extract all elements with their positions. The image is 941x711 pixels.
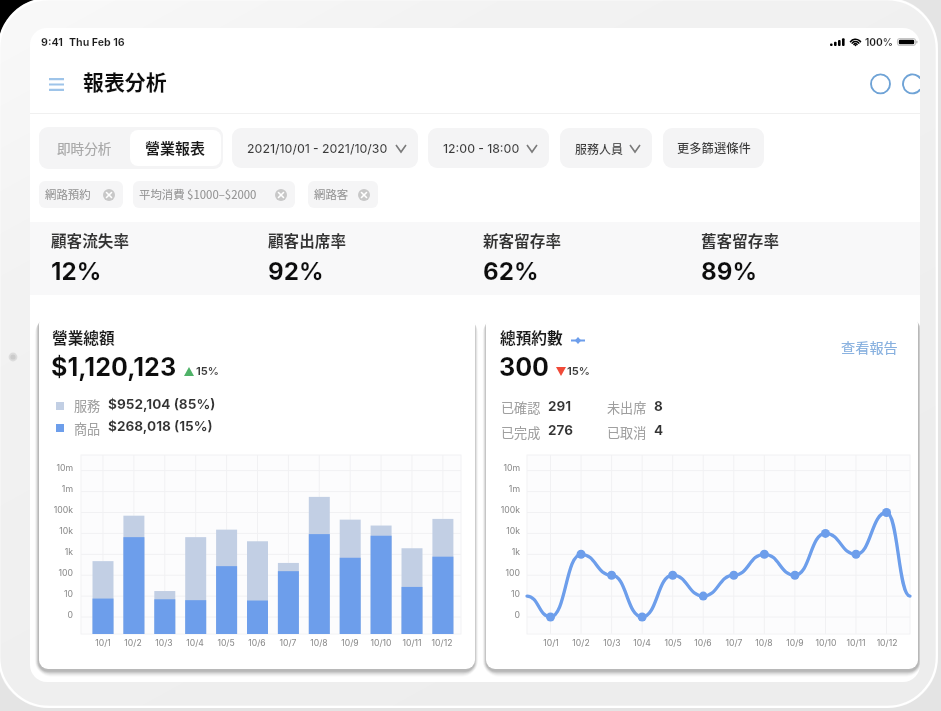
button[interactable]: 網路客 bbox=[308, 181, 378, 208]
staticText: 10/5 bbox=[653, 638, 693, 651]
staticText: 276 bbox=[548, 422, 573, 438]
staticText: 100% bbox=[865, 36, 893, 48]
button[interactable]: Notifications bbox=[869, 72, 892, 95]
staticText: 10/1 bbox=[531, 638, 571, 651]
button[interactable]: Refresh bbox=[901, 72, 920, 95]
staticText: 營業報表 bbox=[145, 137, 206, 159]
staticText: 報表分析 bbox=[83, 66, 167, 96]
staticText: 10/9 bbox=[775, 638, 815, 651]
staticText: 89% bbox=[701, 257, 758, 286]
staticText: 10/5 bbox=[206, 638, 246, 651]
staticText: 10/2 bbox=[113, 638, 153, 651]
staticText: 已確認 bbox=[501, 398, 541, 417]
staticText: 1k bbox=[486, 547, 520, 561]
staticText: 15% bbox=[567, 364, 590, 377]
staticText: 92% bbox=[268, 257, 324, 286]
staticText: 即時分析 bbox=[57, 138, 112, 158]
staticText: 300 bbox=[499, 352, 550, 382]
staticText: 10/10 bbox=[361, 638, 401, 651]
staticText: 10/6 bbox=[237, 638, 277, 651]
staticText: 10/12 bbox=[867, 638, 907, 651]
staticText: 9:41 bbox=[41, 36, 63, 49]
staticText: 10/6 bbox=[683, 638, 723, 651]
staticText: 10/3 bbox=[592, 638, 632, 651]
button[interactable]: 更多篩選條件 bbox=[663, 128, 764, 168]
staticText: 10/11 bbox=[392, 638, 432, 651]
staticText: 12% bbox=[51, 257, 102, 286]
button[interactable]: 網路預約 bbox=[39, 181, 123, 208]
staticText: 顧客出席率 bbox=[268, 229, 346, 252]
staticText: 10/4 bbox=[622, 638, 662, 651]
staticText: 12:00 - 18:00 bbox=[443, 141, 520, 156]
staticText: 商品 bbox=[74, 419, 101, 438]
staticText: 10m bbox=[486, 463, 520, 477]
staticText: 100k bbox=[486, 505, 520, 519]
staticText: 8 bbox=[654, 398, 663, 414]
staticText: 10k bbox=[486, 526, 520, 540]
staticText: 10k bbox=[39, 526, 73, 540]
staticText: 1m bbox=[486, 484, 520, 498]
staticText: 100 bbox=[486, 568, 520, 582]
staticText: 10 bbox=[39, 589, 73, 603]
staticText: 更多篩選條件 bbox=[677, 139, 751, 157]
staticText: 顧客流失率 bbox=[51, 229, 129, 252]
staticText: 10 bbox=[486, 589, 520, 603]
staticText: 10/11 bbox=[836, 638, 876, 651]
staticText: 10/1 bbox=[83, 638, 123, 651]
button[interactable]: 平均消費 $1000–$2000 bbox=[133, 181, 295, 208]
staticText: 網路預約 bbox=[45, 186, 91, 203]
staticText: 服務人員 bbox=[575, 140, 624, 157]
button[interactable]: 營業總額 bbox=[39, 315, 475, 669]
staticText: 291 bbox=[548, 398, 572, 414]
staticText: 2021/10/01 - 2021/10/30 bbox=[247, 141, 388, 156]
staticText: 舊客留存率 bbox=[701, 229, 779, 252]
staticText: 服務 bbox=[74, 396, 101, 415]
staticText: 總預約數 bbox=[500, 326, 563, 349]
staticText: 10/2 bbox=[561, 638, 601, 651]
staticText: 未出席 bbox=[607, 398, 647, 417]
staticText: 10/12 bbox=[422, 638, 462, 651]
button[interactable]: Menu bbox=[37, 65, 75, 103]
staticText: Thu Feb 16 bbox=[69, 36, 125, 49]
staticText: 10/4 bbox=[175, 638, 215, 651]
staticText: 10/7 bbox=[268, 638, 308, 651]
button[interactable]: 查看報告 bbox=[841, 337, 903, 357]
staticText: 0 bbox=[39, 610, 73, 624]
staticText: 10/8 bbox=[299, 638, 339, 651]
staticText: 0 bbox=[486, 610, 520, 624]
button[interactable]: 12:00 - 18:00 bbox=[428, 128, 549, 168]
staticText: 10/7 bbox=[714, 638, 754, 651]
button[interactable]: 營業報表 bbox=[130, 130, 221, 166]
staticText: $952,104 (85%) bbox=[108, 396, 216, 412]
staticText: $268,018 (15%) bbox=[108, 418, 213, 434]
staticText: 10/8 bbox=[744, 638, 784, 651]
staticText: 查看報告 bbox=[841, 337, 898, 357]
staticText: 100 bbox=[39, 568, 73, 582]
button[interactable]: 總預約數 bbox=[486, 315, 918, 669]
staticText: 10/3 bbox=[144, 638, 184, 651]
staticText: 4 bbox=[654, 422, 664, 438]
staticText: 新客留存率 bbox=[483, 229, 561, 252]
staticText: 已取消 bbox=[607, 423, 647, 442]
button[interactable]: 2021/10/01 - 2021/10/30 bbox=[232, 128, 418, 168]
staticText: 1k bbox=[39, 547, 73, 561]
staticText: 網路客 bbox=[314, 186, 349, 203]
staticText: 已完成 bbox=[501, 423, 541, 442]
button[interactable]: 服務人員 bbox=[560, 128, 652, 168]
button[interactable]: 即時分析 bbox=[39, 127, 129, 169]
staticText: 10m bbox=[39, 463, 73, 477]
staticText: 10/9 bbox=[330, 638, 370, 651]
staticText: 62% bbox=[483, 257, 539, 286]
staticText: 10/10 bbox=[806, 638, 846, 651]
staticText: 100k bbox=[39, 505, 73, 519]
staticText: 平均消費 $1000–$2000 bbox=[139, 186, 257, 203]
staticText: 1m bbox=[39, 484, 73, 498]
staticText: 15% bbox=[196, 364, 219, 377]
staticText: 營業總額 bbox=[52, 326, 115, 349]
staticText: $1,120,123 bbox=[51, 352, 177, 382]
